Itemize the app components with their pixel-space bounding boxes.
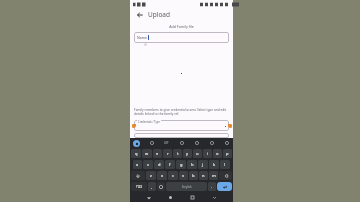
button[interactable]: g (176, 160, 186, 169)
staticText: a (136, 162, 139, 167)
button[interactable]: s (143, 160, 153, 169)
staticText: q (135, 151, 138, 156)
staticText: t (177, 151, 179, 156)
button[interactable]: f (165, 160, 175, 169)
button[interactable]: Settings (179, 140, 185, 146)
button[interactable]: Enter (217, 182, 232, 191)
button[interactable]: v (179, 171, 188, 180)
button[interactable]: m (209, 171, 218, 180)
button[interactable]: Gboard (133, 140, 140, 147)
button[interactable]: Recents (189, 194, 196, 201)
staticText: English (182, 185, 192, 189)
button[interactable]: t (173, 149, 182, 158)
staticText: g (180, 162, 183, 167)
staticText: h (191, 162, 194, 167)
button[interactable]: a (133, 160, 142, 169)
button[interactable]: l (220, 160, 230, 169)
staticText: x (161, 173, 164, 178)
button[interactable]: o (213, 149, 222, 158)
button[interactable]: x (157, 171, 167, 180)
staticText: k (213, 162, 216, 167)
staticText: s (147, 162, 149, 167)
button[interactable]: h (187, 160, 197, 169)
staticText: Add Family file (130, 24, 233, 29)
button[interactable] (134, 133, 229, 138)
button[interactable]: k (209, 160, 219, 169)
staticText: w (145, 151, 149, 156)
button[interactable]: d (154, 160, 164, 169)
button[interactable]: j (198, 160, 208, 169)
button[interactable]: ?123 (131, 182, 147, 191)
staticText: p (226, 151, 229, 156)
staticText: n (202, 173, 205, 178)
button[interactable]: , (148, 182, 156, 191)
staticText: c (172, 173, 174, 178)
button[interactable]: Emoji (157, 182, 165, 191)
button[interactable]: r (163, 149, 172, 158)
button[interactable]: Back (145, 194, 152, 201)
button[interactable]: u (193, 149, 202, 158)
button[interactable]: Home (167, 194, 174, 201)
staticText: o (216, 151, 219, 156)
staticText: m (212, 173, 216, 178)
staticText: Upload (148, 10, 171, 19)
staticText: ?123 (136, 185, 143, 189)
staticText: z (150, 173, 152, 178)
button[interactable]: p (223, 149, 232, 158)
button[interactable]: y (183, 149, 192, 158)
staticText: e (156, 151, 159, 156)
staticText: v (182, 173, 185, 178)
button[interactable]: Clipboard (209, 140, 215, 146)
staticText: l (224, 162, 226, 167)
button[interactable]: i (203, 149, 212, 158)
button[interactable]: n (199, 171, 208, 180)
button[interactable]: . (208, 182, 216, 191)
staticText: Name (137, 35, 148, 40)
button[interactable]: Back (134, 9, 145, 20)
staticText: j (202, 162, 204, 167)
button[interactable]: Stickers (149, 140, 155, 146)
staticText: f (169, 162, 171, 167)
button[interactable]: English (166, 182, 207, 191)
staticText: y (186, 151, 189, 156)
button[interactable] (134, 120, 229, 131)
staticText: i (207, 151, 209, 156)
staticText: u (196, 151, 199, 156)
button[interactable]: Voice input (224, 140, 230, 146)
button[interactable]: Shift (131, 171, 145, 180)
staticText: d (158, 162, 161, 167)
staticText: GIF (164, 141, 169, 145)
staticText: b (192, 173, 195, 178)
button[interactable]: z (146, 171, 156, 180)
button[interactable]: Hide keyboard (211, 194, 218, 201)
button[interactable]: Name (134, 32, 229, 43)
button[interactable]: Backspace (219, 171, 232, 180)
button[interactable]: w (142, 149, 152, 158)
button[interactable]: e (153, 149, 162, 158)
staticText: , (151, 184, 153, 189)
button[interactable]: q (131, 149, 141, 158)
staticText: r (167, 151, 169, 156)
button[interactable]: c (168, 171, 178, 180)
staticText: Credentials / Type (138, 120, 160, 124)
staticText: Family members to give credential access… (134, 108, 229, 116)
staticText: . (211, 184, 213, 189)
button[interactable]: b (189, 171, 198, 180)
button[interactable]: Themes (194, 140, 200, 146)
button[interactable]: Open menu (223, 124, 227, 128)
